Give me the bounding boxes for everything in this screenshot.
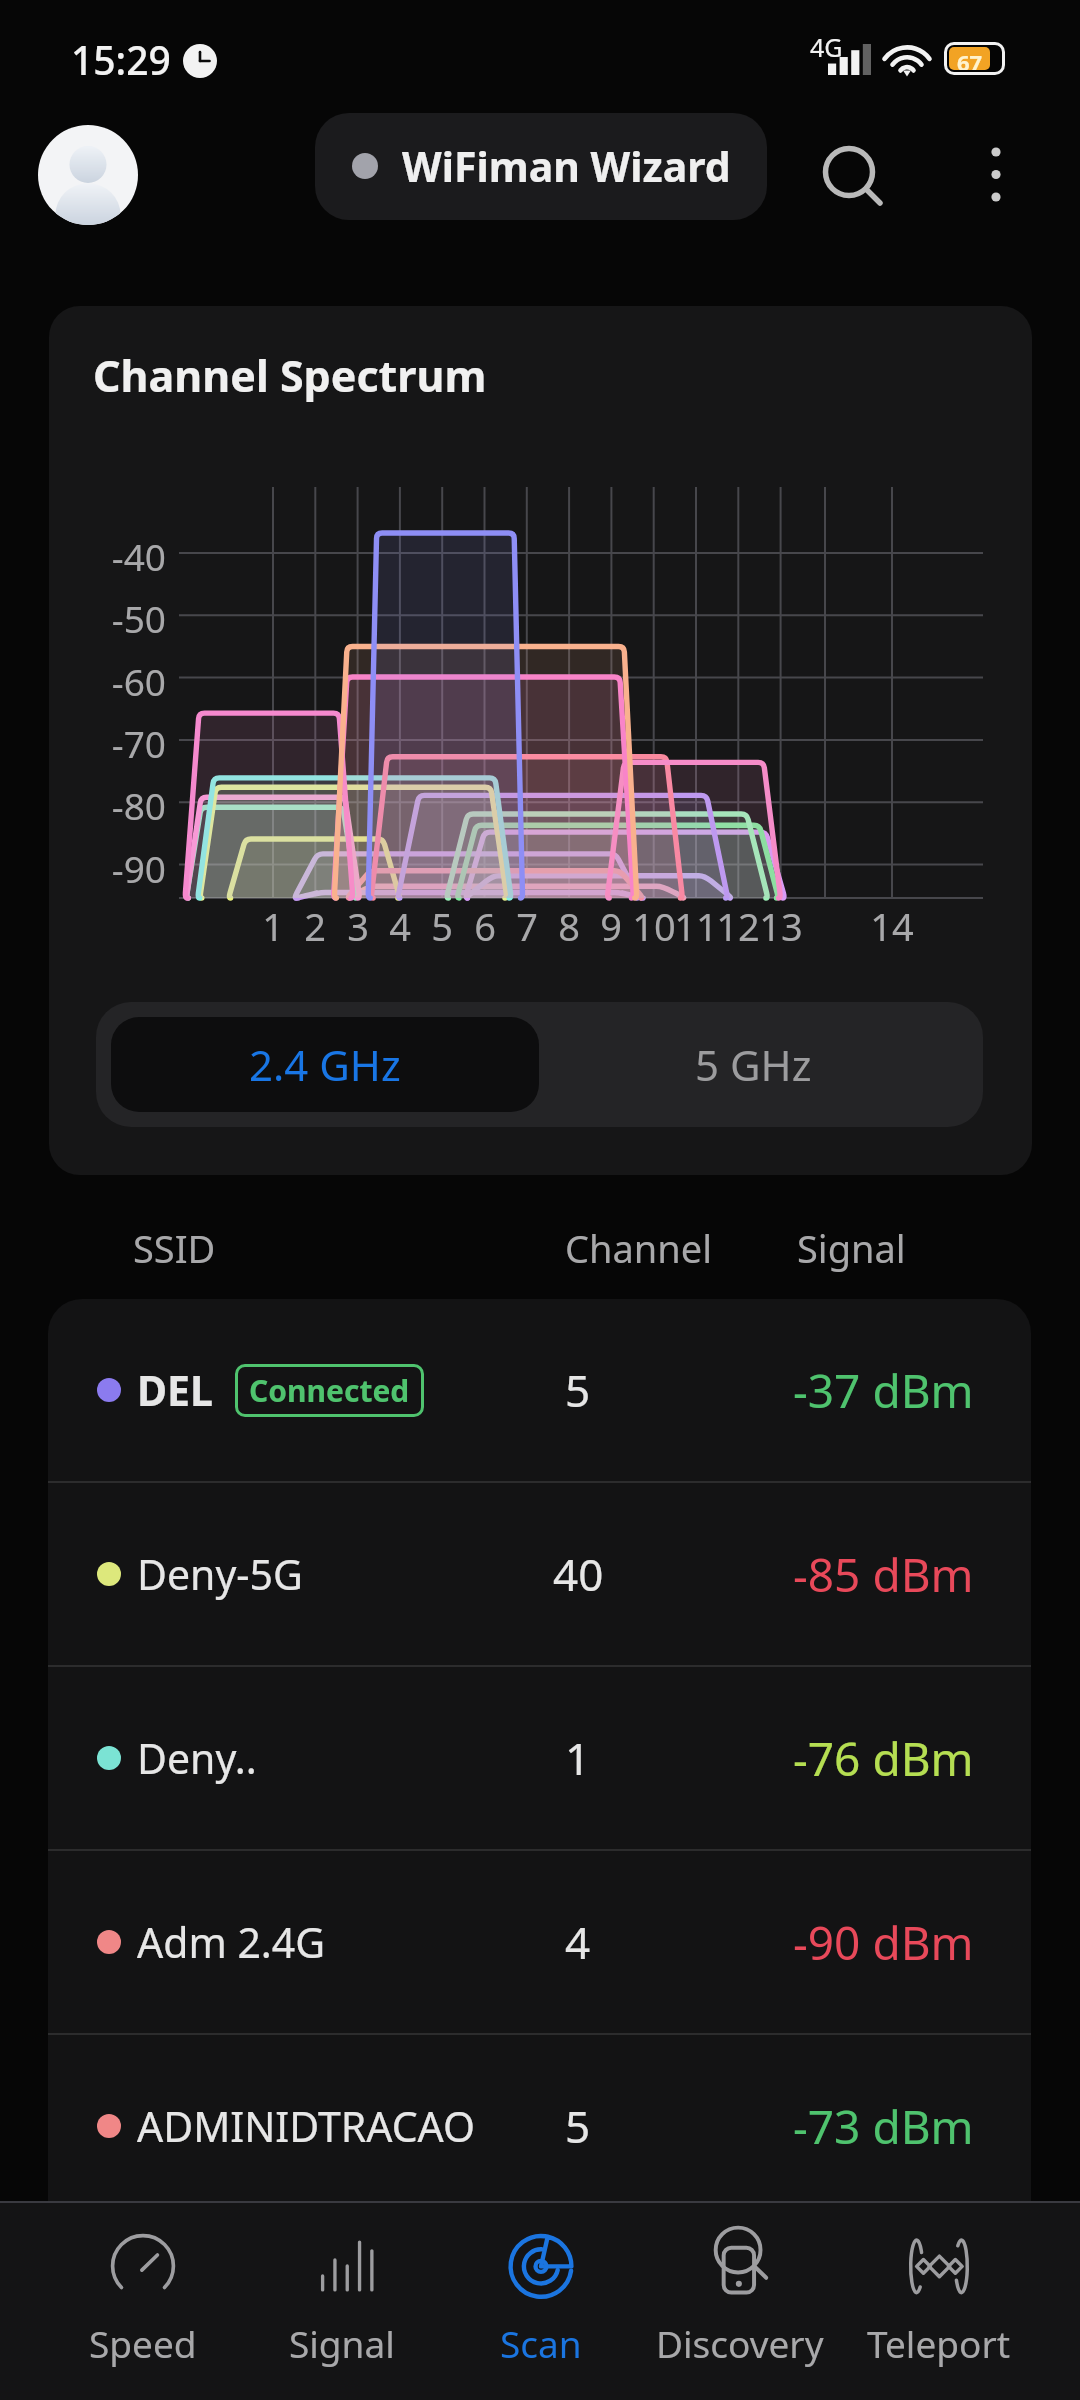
staticText: 2.4 GHz [249, 1036, 401, 1093]
button[interactable]: Speed [43, 2228, 242, 2368]
button[interactable]: Signal [242, 2228, 441, 2368]
staticText: -60 [49, 656, 166, 706]
staticText: Connected [249, 1370, 410, 1411]
button[interactable]: 2.4 GHz [111, 1017, 539, 1112]
staticText: -40 [49, 531, 166, 581]
staticText: Adm 2.4G [137, 1914, 326, 1970]
staticText: 6 [455, 900, 515, 952]
button[interactable]: Teleport [839, 2228, 1038, 2368]
staticText: 5 [565, 1360, 591, 1420]
staticText: Channel Spectrum [93, 346, 487, 405]
staticText: -50 [49, 593, 166, 643]
staticText: 10 [624, 900, 684, 952]
button[interactable]: 5 GHz [539, 1017, 968, 1112]
staticText: 4 [565, 1912, 591, 1972]
staticText: WiFiman Wizard [402, 138, 731, 194]
staticText: ADMINIDTRACAO [137, 2098, 475, 2154]
staticText: 4 [370, 900, 430, 952]
staticText: Speed [89, 2318, 197, 2368]
staticText: 5 [565, 2096, 591, 2156]
staticText: 11 [666, 900, 726, 952]
staticText: 1 [565, 1728, 591, 1788]
staticText: 13 [751, 900, 811, 952]
staticText: Signal [289, 2318, 395, 2368]
button[interactable]: DEL [48, 1299, 1031, 1481]
button[interactable]: Adm 2.4G [48, 1851, 1031, 2033]
staticText: Deny-5G [137, 1546, 303, 1602]
button[interactable]: WiFiman Wizard [315, 113, 767, 220]
staticText: -70 [49, 718, 166, 768]
staticText: 67 [957, 47, 983, 70]
staticText: 5 [412, 900, 472, 952]
staticText: 9 [581, 900, 641, 952]
staticText: 5 GHz [695, 1036, 812, 1093]
staticText: -90 dBm [793, 1911, 974, 1974]
staticText: -37 dBm [793, 1359, 974, 1422]
staticText: DEL [137, 1362, 213, 1418]
button[interactable]: Discovery [640, 2228, 839, 2368]
staticText: Signal [797, 1222, 906, 1274]
staticText: 12 [708, 900, 768, 952]
staticText: Deny.. [137, 1730, 257, 1786]
staticText: -90 [49, 843, 166, 893]
button[interactable]: Account [38, 125, 138, 225]
button[interactable]: Search [805, 128, 893, 216]
button[interactable]: Scan [441, 2228, 640, 2368]
staticText: 3 [328, 900, 388, 952]
staticText: 1 [243, 900, 303, 952]
staticText: Scan [500, 2318, 582, 2368]
button[interactable]: Deny.. [48, 1667, 1031, 1849]
button[interactable]: More options [952, 130, 1040, 218]
staticText: -85 dBm [793, 1543, 974, 1606]
staticText: Teleport [867, 2318, 1011, 2368]
button[interactable]: Deny-5G [48, 1483, 1031, 1665]
staticText: SSID [133, 1222, 216, 1274]
staticText: 2 [285, 900, 345, 952]
staticText: 8 [539, 900, 599, 952]
staticText: Discovery [656, 2318, 824, 2368]
staticText: 7 [497, 900, 557, 952]
staticText: Channel [565, 1222, 713, 1274]
staticText: -73 dBm [793, 2095, 974, 2158]
staticText: 14 [862, 900, 922, 952]
staticText: 15:29 [71, 33, 171, 86]
staticText: -76 dBm [793, 1727, 974, 1790]
staticText: -80 [49, 780, 166, 830]
staticText: 40 [553, 1544, 604, 1604]
button[interactable]: ADMINIDTRACAO [48, 2035, 1031, 2217]
staticText: 4G [810, 30, 843, 64]
